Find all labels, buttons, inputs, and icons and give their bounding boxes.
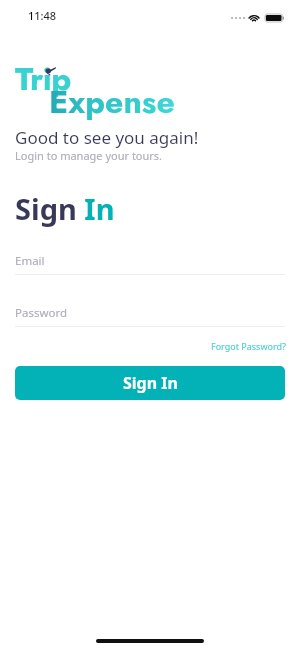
staticText: Login to manage your tours. — [15, 148, 163, 163]
button[interactable]: Sign In — [15, 366, 285, 400]
staticText: Forgot Password? — [211, 340, 286, 352]
staticText: Expense — [49, 79, 175, 125]
staticText: Good to see you again! — [15, 126, 199, 149]
button[interactable]: Forgot Password? — [206, 336, 291, 356]
staticText: 11:48 — [28, 8, 57, 23]
staticText: Sign In — [15, 189, 115, 228]
staticText: Sign In — [123, 372, 178, 394]
staticText: Trip — [15, 55, 71, 102]
staticText: Password — [15, 305, 68, 321]
staticText: Email — [15, 253, 45, 269]
